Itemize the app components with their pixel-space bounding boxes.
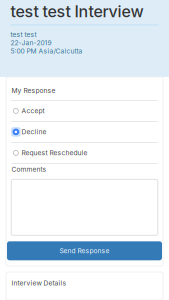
staticText: My Response <box>11 86 55 95</box>
button[interactable]: Send Response <box>6 241 163 260</box>
button[interactable]: Decline <box>6 122 163 142</box>
staticText: Comments <box>11 165 46 173</box>
button[interactable]: Request Reschedule <box>6 143 163 163</box>
staticText: 22-Jan-2019 <box>10 39 51 47</box>
staticText: test test <box>10 31 36 39</box>
staticText: test test Interview <box>10 2 143 21</box>
staticText: Accept <box>21 107 44 115</box>
button[interactable]: Accept <box>6 101 163 121</box>
staticText: Interview Details <box>11 279 66 287</box>
staticText: Decline <box>21 128 46 136</box>
staticText: Send Response <box>59 247 109 255</box>
staticText: 5:00 PM Asia/Calcutta <box>10 47 82 55</box>
staticText: Request Reschedule <box>21 149 87 157</box>
